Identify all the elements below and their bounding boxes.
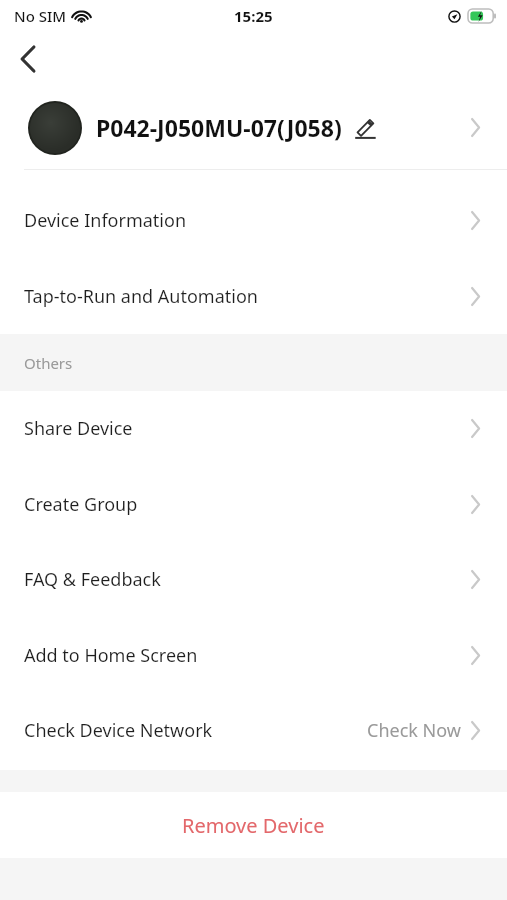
button[interactable]: Create Group <box>0 466 507 542</box>
button[interactable]: Check Device Network <box>0 693 507 768</box>
staticText: No SIM <box>14 6 67 26</box>
button[interactable]: Edit device name <box>352 115 378 141</box>
staticText: Share Device <box>24 416 133 441</box>
button[interactable]: FAQ & Feedback <box>0 542 507 617</box>
button[interactable]: P042-J050MU-07(J058) <box>0 86 507 169</box>
staticText: Others <box>24 353 73 373</box>
button[interactable]: Tap-to-Run and Automation <box>0 258 507 334</box>
button[interactable]: Back <box>8 39 48 79</box>
staticText: Device Information <box>24 208 187 233</box>
staticText: 15:25 <box>234 6 273 26</box>
button[interactable]: Device Information <box>0 183 507 258</box>
staticText: Tap-to-Run and Automation <box>24 284 258 309</box>
button[interactable]: Add to Home Screen <box>0 617 507 693</box>
staticText: Check Device Network <box>24 718 213 743</box>
staticText: Check Now <box>367 718 461 743</box>
button[interactable]: Remove Device <box>0 792 507 858</box>
staticText: Remove Device <box>182 812 325 839</box>
staticText: Create Group <box>24 492 138 517</box>
staticText: Add to Home Screen <box>24 643 198 668</box>
staticText: FAQ & Feedback <box>24 567 161 592</box>
staticText: P042-J050MU-07(J058) <box>96 112 342 143</box>
button[interactable]: Share Device <box>0 391 507 466</box>
